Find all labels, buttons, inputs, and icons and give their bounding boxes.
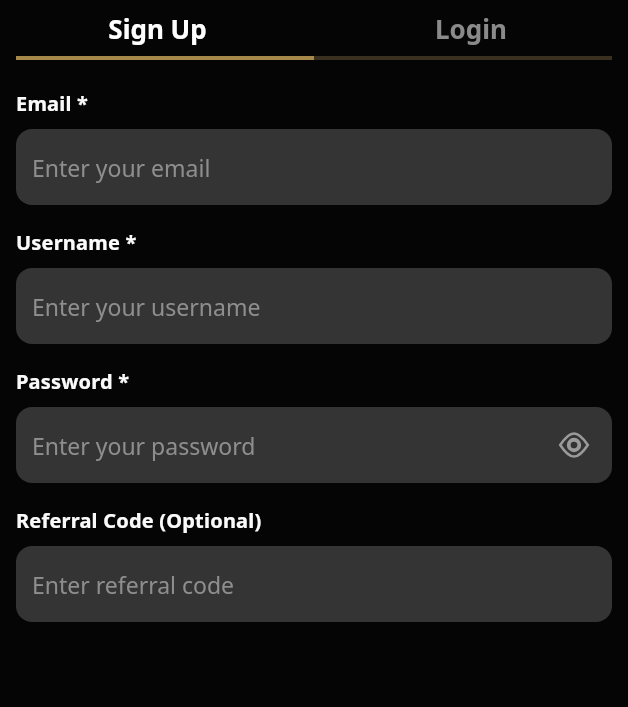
- button[interactable]: Sign Up: [0, 0, 314, 56]
- button[interactable]: Enter your password: [16, 407, 612, 483]
- staticText: Referral Code (Optional): [16, 507, 262, 534]
- button[interactable]: Enter referral code: [16, 546, 612, 622]
- button[interactable]: Enter your username: [16, 268, 612, 344]
- staticText: Email *: [16, 90, 89, 117]
- staticText: Login: [435, 11, 507, 46]
- staticText: Enter your password: [32, 430, 256, 461]
- staticText: Enter your email: [32, 152, 211, 183]
- staticText: Enter referral code: [32, 569, 235, 600]
- staticText: Password *: [16, 368, 130, 395]
- button[interactable]: Login: [314, 0, 628, 56]
- staticText: Username *: [16, 229, 137, 256]
- staticText: Sign Up: [108, 11, 207, 46]
- staticText: Enter your username: [32, 291, 261, 322]
- button[interactable]: Enter your email: [16, 129, 612, 205]
- button[interactable]: Show password: [552, 423, 596, 467]
